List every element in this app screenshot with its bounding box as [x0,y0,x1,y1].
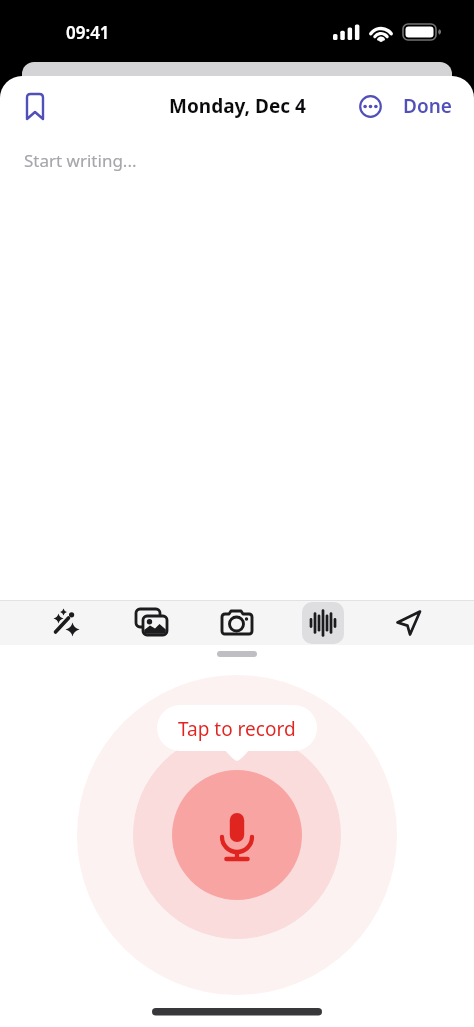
staticText: Monday, Dec 4 [169,93,306,119]
button[interactable] [44,602,86,644]
button[interactable] [302,602,344,644]
button[interactable] [355,91,385,121]
button[interactable] [130,602,172,644]
button[interactable] [388,602,430,644]
staticText: 09:41 [66,21,110,44]
button[interactable]: Tap to record [178,716,296,742]
staticText: Start writing... [24,149,137,172]
staticText: Done [403,93,452,119]
button[interactable]: Done [403,93,452,119]
button[interactable] [18,89,52,123]
button[interactable] [216,602,258,644]
button[interactable] [172,770,302,900]
